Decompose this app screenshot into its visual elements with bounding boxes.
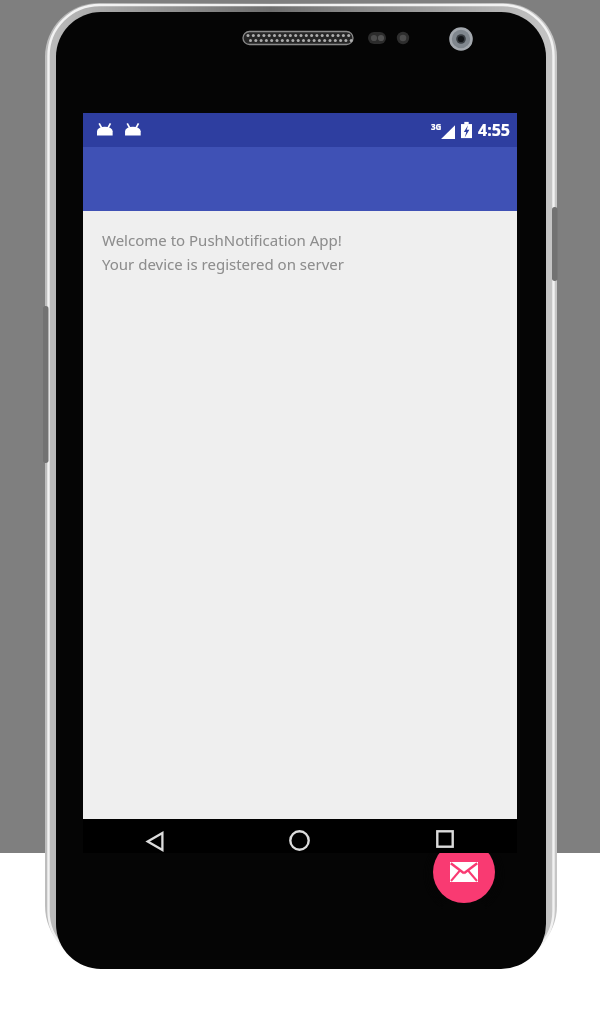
staticText: Your device is registered on server bbox=[102, 254, 344, 274]
staticText: Welcome to PushNotification App! bbox=[102, 230, 342, 250]
button[interactable]: Back bbox=[83, 819, 227, 853]
button[interactable]: Home bbox=[227, 819, 372, 853]
staticText: 3G bbox=[431, 121, 442, 132]
staticText: 4:55 bbox=[478, 119, 510, 141]
button[interactable]: Recents bbox=[372, 819, 517, 853]
button[interactable]: Send notification bbox=[433, 841, 495, 903]
